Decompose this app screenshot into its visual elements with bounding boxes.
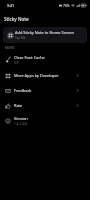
- staticText: 9:41: [7, 3, 15, 8]
- staticText: 0 B: [14, 61, 19, 65]
- other: Rate: [5, 103, 11, 109]
- other: Version: [5, 118, 11, 124]
- other: Clear font cache: [5, 57, 11, 63]
- staticText: Tap Me: [15, 36, 26, 40]
- button[interactable]: Feedback: [0, 83, 90, 98]
- staticText: Sticky Note: [4, 16, 29, 22]
- button[interactable]: Rate: [0, 98, 90, 113]
- button[interactable]: Clear font cache: [0, 52, 90, 68]
- staticText: 1.4.2 (42): [14, 122, 28, 126]
- button[interactable]: More apps: [0, 68, 90, 83]
- staticText: Rate: [14, 103, 23, 108]
- staticText: 76%: [63, 3, 70, 7]
- staticText: MORE: [5, 46, 15, 50]
- staticText: Clear Font Cache: [14, 55, 45, 60]
- button[interactable]: Add Sticky Note to Home Screen: [3, 27, 87, 43]
- staticText: Version: [14, 116, 28, 121]
- other: Feedback: [5, 88, 11, 94]
- button[interactable]: Version: [0, 113, 90, 129]
- staticText: More Apps by Developer: [14, 73, 59, 78]
- other: More apps: [5, 73, 11, 79]
- staticText: Feedback: [14, 88, 32, 93]
- staticText: Add Sticky Note to Home Screen: [15, 30, 74, 35]
